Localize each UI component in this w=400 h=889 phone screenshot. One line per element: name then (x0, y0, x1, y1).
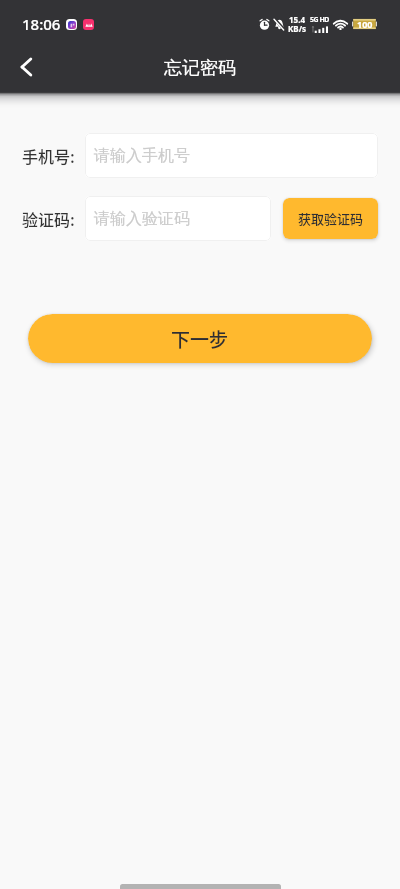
button[interactable]: 下一步 (28, 314, 372, 363)
staticText: KB/s (288, 23, 306, 34)
staticText: 下一步 (171, 325, 229, 353)
staticText: 验证码: (22, 207, 75, 230)
staticText: 请输入手机号 (94, 146, 190, 166)
button[interactable]: 请输入验证码 (85, 196, 271, 241)
button[interactable]: Back (10, 52, 42, 84)
staticText: 5G HD (310, 15, 329, 25)
button[interactable]: 请输入手机号 (85, 133, 378, 178)
staticText: 18:06 (22, 14, 61, 34)
staticText: 手机号: (22, 144, 75, 167)
staticText: 100 (357, 18, 373, 30)
staticText: 获取验证码 (298, 209, 364, 228)
staticText: 请输入验证码 (94, 209, 190, 229)
staticText: 忘记密码 (164, 57, 236, 80)
staticText: 15.4 (289, 14, 305, 25)
button[interactable]: 获取验证码 (283, 198, 378, 239)
